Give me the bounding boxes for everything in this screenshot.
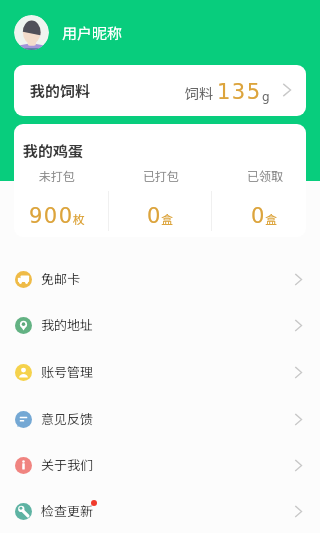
button[interactable]: 我的饲料 [14, 65, 306, 116]
staticText: 未打包 [39, 167, 76, 184]
staticText: 已打包 [143, 167, 180, 184]
staticText: 135 [217, 80, 262, 104]
staticText: 账号管理 [41, 362, 94, 381]
staticText: 盒 [265, 210, 278, 227]
button[interactable]: Profile photo [0, 0, 320, 65]
staticText: 免邮卡 [41, 269, 81, 288]
button[interactable]: 我的地址 [0, 302, 320, 349]
staticText: 饲料 [185, 83, 213, 103]
staticText: 盒 [161, 210, 174, 227]
button[interactable]: 意见反馈 [0, 396, 320, 442]
staticText: 0 [147, 204, 162, 228]
staticText: 枚 [73, 210, 86, 227]
staticText: 用户昵称 [62, 22, 123, 44]
button[interactable]: 免邮卡 [0, 256, 320, 302]
button[interactable]: 检查更新 [0, 489, 320, 533]
other: Profile photo [14, 15, 49, 50]
staticText: g [262, 90, 270, 104]
staticText: 900 [29, 204, 74, 228]
staticText: 0 [251, 204, 266, 228]
staticText: 关于我们 [41, 455, 94, 474]
staticText: 我的地址 [41, 315, 94, 334]
button[interactable]: 已打包 [109, 167, 213, 228]
staticText: 检查更新 [41, 501, 94, 520]
staticText: 已领取 [247, 167, 284, 184]
button[interactable]: 账号管理 [0, 349, 320, 396]
button[interactable]: 未打包 [14, 167, 109, 228]
button[interactable]: 已领取 [213, 167, 306, 228]
button[interactable]: 关于我们 [0, 442, 320, 489]
staticText: 意见反馈 [41, 409, 94, 428]
staticText: 我的饲料 [30, 80, 91, 102]
staticText: 我的鸡蛋 [23, 140, 84, 162]
